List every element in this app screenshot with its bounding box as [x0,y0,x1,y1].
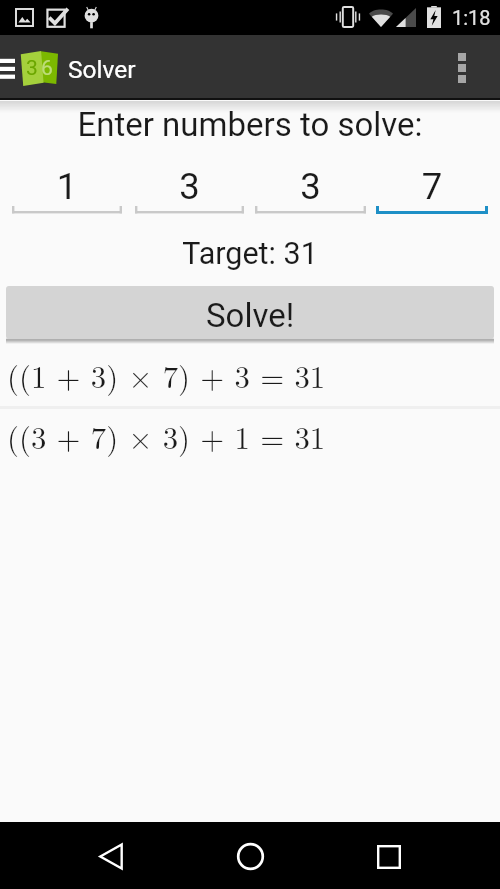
button[interactable]: 7 [376,155,488,215]
button[interactable]: 3 [255,155,366,215]
staticText: 1:18 [452,6,491,29]
staticText: 1 [12,165,122,208]
staticText: 3 [255,165,366,208]
button[interactable]: 3 [135,155,244,215]
button[interactable]: ((1 + 3) × 7) + 3 = 31 [0,344,500,405]
button[interactable]: Recent apps [356,825,422,889]
staticText: 3 [135,165,244,208]
button[interactable]: Home [217,824,283,888]
staticText: ((3 + 7) × 3) + 1 = 31 [7,414,326,458]
staticText: Enter numbers to solve: [0,105,500,144]
button[interactable]: Solve! [6,286,494,339]
staticText: Solve! [206,296,295,335]
button[interactable]: Open navigation drawer [0,35,20,100]
button[interactable]: ((3 + 7) × 3) + 1 = 31 [0,405,500,466]
staticText: ((1 + 3) × 7) + 3 = 31 [7,353,326,397]
staticText: 3 [26,56,38,81]
staticText: Solver [68,55,136,84]
staticText: 6 [41,56,53,81]
staticText: Target: 31 [0,236,500,272]
button[interactable]: Back [78,824,144,888]
button[interactable]: More options [440,35,484,100]
staticText: 7 [376,165,488,208]
button[interactable]: 1 [12,155,122,215]
